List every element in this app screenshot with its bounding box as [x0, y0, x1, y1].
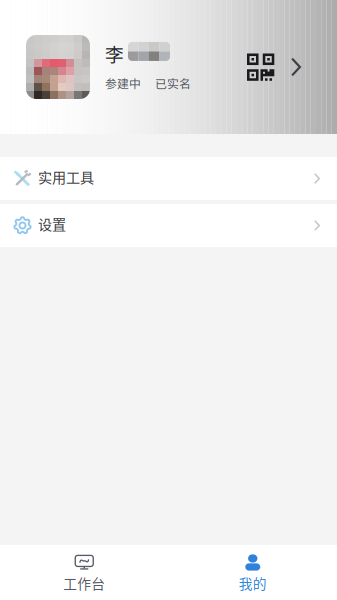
- button[interactable]: 我的: [168, 545, 337, 600]
- staticText: 参建中: [105, 74, 141, 92]
- staticText: 工作台: [63, 573, 105, 593]
- button[interactable]: 工作台: [0, 545, 168, 600]
- staticText: 设置: [38, 213, 66, 234]
- staticText: 实用工具: [38, 166, 94, 187]
- button[interactable]: 实用工具: [0, 157, 337, 200]
- button[interactable]: 设置: [0, 204, 337, 247]
- button[interactable]: 扫一扫: [247, 53, 337, 80]
- staticText: 李: [105, 40, 124, 67]
- staticText: 我的: [239, 573, 267, 593]
- staticText: 已实名: [155, 74, 191, 92]
